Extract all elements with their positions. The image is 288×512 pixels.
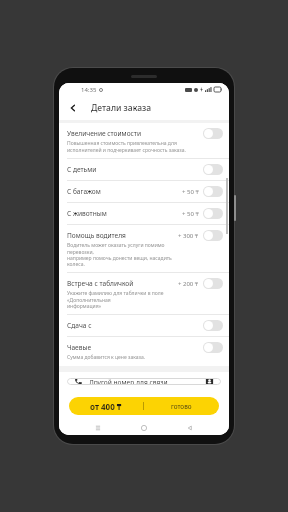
button[interactable]: Recents xyxy=(91,421,105,435)
staticText: Повышенная стоимость привлекательна для … xyxy=(67,140,186,153)
staticText: от 400 ₸ xyxy=(90,401,122,412)
staticText: 14:35 xyxy=(81,86,97,94)
button[interactable]: Toggle xyxy=(203,230,223,241)
staticText: Водитель может оказать услуги помимо пер… xyxy=(67,242,178,267)
staticText: + 200 ₸ xyxy=(178,280,199,288)
staticText: Другой номер для связи xyxy=(89,378,168,385)
button[interactable]: Back xyxy=(63,98,83,118)
button[interactable]: Toggle xyxy=(203,208,223,219)
button[interactable]: Чаевые xyxy=(59,337,229,366)
button[interactable]: Toggle xyxy=(203,320,223,331)
button[interactable]: Toggle xyxy=(203,278,223,289)
button[interactable]: Другой номер для связи xyxy=(67,378,221,385)
staticText: Сумма добавится к цене заказа. xyxy=(67,354,146,361)
button[interactable]: Увеличение стоимости xyxy=(59,123,229,158)
staticText: + 50 ₸ xyxy=(182,210,199,218)
button[interactable]: Home xyxy=(137,421,151,435)
staticText: Сдача с xyxy=(67,321,92,330)
staticText: + 300 ₸ xyxy=(178,232,199,240)
button[interactable]: Choose contact xyxy=(205,378,214,385)
staticText: Чаевые xyxy=(67,343,92,352)
button[interactable]: Toggle xyxy=(203,128,223,139)
button[interactable]: Помощь водителя xyxy=(59,225,229,272)
staticText: готово xyxy=(171,402,192,411)
button[interactable]: С багажом xyxy=(59,181,229,202)
button[interactable]: Back xyxy=(183,421,197,435)
button[interactable]: Сдача с xyxy=(59,315,229,336)
staticText: + 50 ₸ xyxy=(182,188,199,196)
button[interactable]: Toggle xyxy=(203,186,223,197)
staticText: С животным xyxy=(67,209,107,218)
button[interactable]: Toggle xyxy=(203,164,223,175)
staticText: Укажите фамилию для таблички в поле «Доп… xyxy=(67,290,178,309)
button[interactable]: Toggle xyxy=(203,342,223,353)
staticText: Детали заказа xyxy=(91,102,152,114)
button[interactable]: Встреча с табличкой xyxy=(59,273,229,314)
staticText: С детьми xyxy=(67,165,97,174)
button[interactable]: от 400 ₸ xyxy=(69,397,219,415)
staticText: Помощь водителя xyxy=(67,231,126,240)
staticText: Встреча с табличкой xyxy=(67,279,134,288)
staticText: Увеличение стоимости xyxy=(67,129,141,138)
staticText: С багажом xyxy=(67,187,101,196)
button[interactable]: С детьми xyxy=(59,159,229,180)
button[interactable]: С животным xyxy=(59,203,229,224)
